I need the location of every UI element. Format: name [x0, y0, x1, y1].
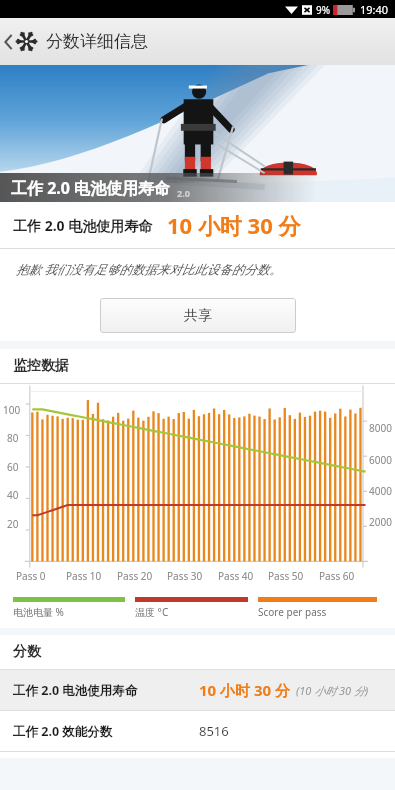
staticText: 20 [7, 517, 19, 531]
staticText: 电池电量 % [13, 605, 64, 619]
button[interactable]: Back [0, 23, 39, 60]
staticText: 8000 [369, 421, 392, 435]
staticText: 分数详细信息 [46, 31, 148, 52]
staticText: (10 小时 30 分) [296, 683, 369, 698]
staticText: Pass 30 [167, 569, 203, 583]
staticText: Score per pass [258, 605, 327, 619]
staticText: 40 [7, 488, 19, 502]
staticText: 10 小时 30 分 [199, 680, 291, 700]
staticText: Pass 20 [117, 569, 153, 583]
staticText: Pass 0 [16, 569, 46, 583]
button[interactable]: 工作 2.0 电池使用寿命 [0, 670, 395, 710]
staticText: 9% [316, 3, 331, 17]
staticText: 工作 2.0 电池使用寿命 [11, 177, 171, 199]
staticText: 10 小时 30 分 [167, 210, 301, 240]
staticText: 6000 [369, 453, 392, 467]
staticText: 19:40 [360, 2, 389, 17]
staticText: 60 [7, 460, 19, 474]
staticText: 4000 [369, 484, 392, 498]
staticText: 80 [7, 431, 19, 445]
staticText: 抱歉 我们没有足够的数据来对比此设备的分数。 [16, 261, 282, 278]
staticText: 工作 2.0 电池使用寿命 [13, 682, 138, 699]
staticText: 分数 [13, 643, 41, 661]
staticText: 2000 [369, 515, 392, 529]
button[interactable]: 共享 [100, 298, 296, 333]
staticText: Pass 10 [66, 569, 102, 583]
staticText: 8516 [199, 722, 229, 740]
staticText: 工作 2.0 效能分数 [13, 723, 113, 740]
staticText: Pass 60 [319, 569, 355, 583]
staticText: Pass 50 [268, 569, 304, 583]
button[interactable]: 工作 2.0 效能分数 [0, 711, 395, 751]
staticText: Pass 40 [218, 569, 254, 583]
staticText: 共享 [184, 307, 212, 325]
staticText: 2.0 [177, 187, 190, 199]
staticText: 温度 °C [135, 605, 169, 619]
staticText: 100 [3, 403, 21, 417]
staticText: 监控数据 [13, 357, 69, 375]
staticText: 工作 2.0 电池使用寿命 [13, 216, 153, 235]
